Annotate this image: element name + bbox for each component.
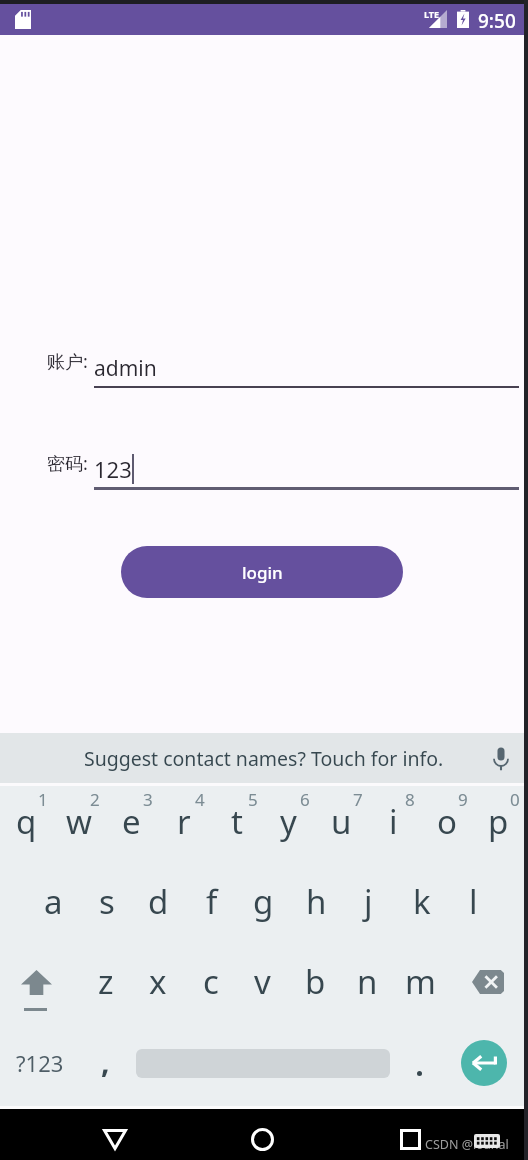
button[interactable]: login [121, 546, 403, 598]
button[interactable]: , [80, 1026, 135, 1100]
staticText: 9 [458, 788, 468, 811]
button[interactable]: Shift [4, 966, 50, 1014]
staticText: 3 [143, 788, 153, 811]
button[interactable]: n [341, 943, 394, 1020]
button[interactable]: Backspace [455, 936, 528, 1013]
staticText: a [44, 879, 63, 924]
button[interactable]: j [342, 863, 395, 940]
button[interactable]: s [80, 863, 133, 940]
staticText: 6 [300, 788, 310, 811]
button[interactable] [392, 1026, 447, 1100]
staticText: l [469, 879, 478, 924]
staticText: 1 [38, 788, 48, 811]
button[interactable]: e [105, 783, 158, 860]
button[interactable]: o [420, 783, 473, 860]
staticText: t [231, 799, 243, 844]
button[interactable]: 账户: [47, 349, 88, 374]
staticText: 8 [405, 788, 415, 811]
staticText: CSDN @loanal [425, 1136, 509, 1153]
staticText: s [99, 879, 115, 924]
staticText: n [357, 959, 378, 1004]
button[interactable]: g [237, 863, 290, 940]
staticText: o [437, 799, 457, 844]
staticText: b [305, 959, 326, 1004]
staticText: c [203, 959, 219, 1004]
button[interactable]: y [262, 783, 315, 860]
button[interactable]: d [132, 863, 185, 940]
button[interactable]: r [157, 783, 210, 860]
staticText: w [66, 799, 92, 844]
button[interactable]: u [315, 783, 368, 860]
staticText: 7 [353, 788, 363, 811]
button[interactable]: p [472, 783, 525, 860]
staticText: 5 [248, 788, 258, 811]
staticText: j [364, 879, 373, 924]
button[interactable]: Suggest contact names? Touch for info. [0, 733, 528, 783]
button[interactable]: Recents [384, 1116, 436, 1160]
button[interactable]: q [0, 783, 53, 860]
button[interactable]: c [184, 943, 237, 1020]
button[interactable]: l [447, 863, 500, 940]
button[interactable]: a [27, 863, 80, 940]
button[interactable]: i [367, 783, 420, 860]
staticText: admin [94, 354, 157, 383]
staticText: p [488, 799, 509, 844]
staticText: h [306, 879, 327, 924]
button[interactable]: 密码: [47, 451, 88, 476]
staticText: v [254, 959, 271, 1004]
staticText: u [331, 799, 352, 844]
staticText: 0 [510, 788, 520, 811]
button[interactable]: m [394, 943, 447, 1020]
button[interactable]: h [290, 863, 343, 940]
staticText: 9:50 [478, 8, 516, 34]
staticText: k [413, 879, 431, 924]
button[interactable]: x [131, 943, 184, 1020]
button[interactable]: Enter [461, 1040, 507, 1086]
staticText: 2 [90, 788, 100, 811]
staticText: g [253, 879, 274, 924]
staticText: r [177, 799, 191, 844]
button[interactable]: ?123 [0, 1026, 80, 1100]
other: Voice input [493, 746, 509, 771]
button[interactable]: f [185, 863, 238, 940]
staticText: Suggest contact names? Touch for info. [84, 745, 444, 772]
staticText: x [149, 959, 167, 1004]
button[interactable]: t [210, 783, 263, 860]
button[interactable]: k [395, 863, 448, 940]
staticText: , [101, 1041, 110, 1082]
staticText: f [206, 879, 218, 924]
staticText: 4 [195, 788, 205, 811]
staticText: d [148, 879, 169, 924]
staticText: 123 [94, 454, 132, 484]
staticText: z [98, 959, 114, 1004]
staticText: y [280, 799, 297, 844]
button[interactable]: v [236, 943, 289, 1020]
staticText: 密码: [47, 451, 88, 476]
staticText: LTE [424, 8, 440, 20]
staticText: 账户: [47, 349, 88, 374]
staticText: login [242, 561, 283, 584]
staticText: e [122, 799, 141, 844]
button[interactable]: Home [236, 1116, 288, 1160]
staticText: ?123 [16, 1048, 64, 1078]
staticText: i [389, 799, 398, 844]
button[interactable]: Back [89, 1116, 141, 1160]
button[interactable]: z [79, 943, 132, 1020]
staticText: m [405, 959, 436, 1004]
button[interactable]: b [289, 943, 342, 1020]
staticText: q [16, 799, 37, 844]
button[interactable]: w [52, 783, 105, 860]
